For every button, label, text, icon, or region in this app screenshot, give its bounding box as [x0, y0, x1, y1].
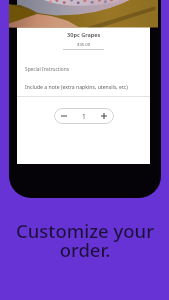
- staticText: 1: [82, 112, 86, 121]
- button[interactable]: Increase quantity: [94, 108, 114, 124]
- staticText: Special Instructions: [25, 66, 70, 73]
- button[interactable]: Decrease quantity: [54, 108, 74, 124]
- staticText: Customize your order.: [10, 218, 160, 263]
- staticText: $35.00: [77, 42, 91, 48]
- staticText: 30pc Grapes: [67, 31, 101, 39]
- staticText: Include a note (extra napkins, utensils,…: [25, 83, 128, 90]
